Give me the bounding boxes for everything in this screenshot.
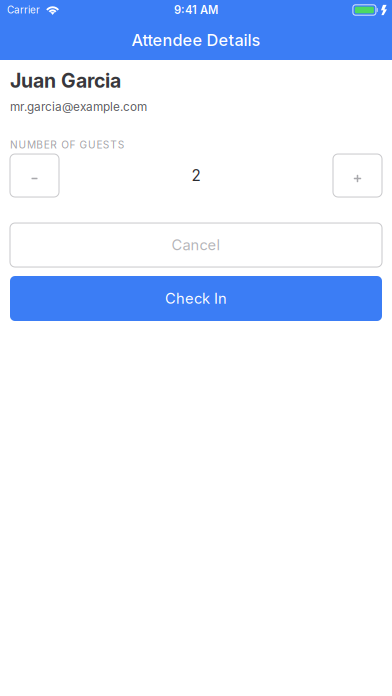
button[interactable]: Cancel — [10, 223, 382, 267]
button[interactable]: Increase number of guests — [333, 154, 382, 197]
staticText: 2 — [191, 166, 200, 185]
button[interactable]: Check In — [10, 276, 382, 321]
staticText: Carrier — [7, 4, 40, 16]
staticText: 9:41 AM — [174, 3, 218, 17]
staticText: NUMBER OF GUESTS — [10, 139, 125, 151]
staticText: Attendee Details — [131, 30, 260, 50]
button[interactable]: Decrease number of guests — [10, 154, 59, 197]
staticText: Cancel — [171, 236, 220, 254]
staticText: Juan Garcia — [10, 69, 121, 93]
staticText: Check In — [165, 290, 227, 307]
staticText: mr.garcia@example.com — [10, 100, 147, 114]
